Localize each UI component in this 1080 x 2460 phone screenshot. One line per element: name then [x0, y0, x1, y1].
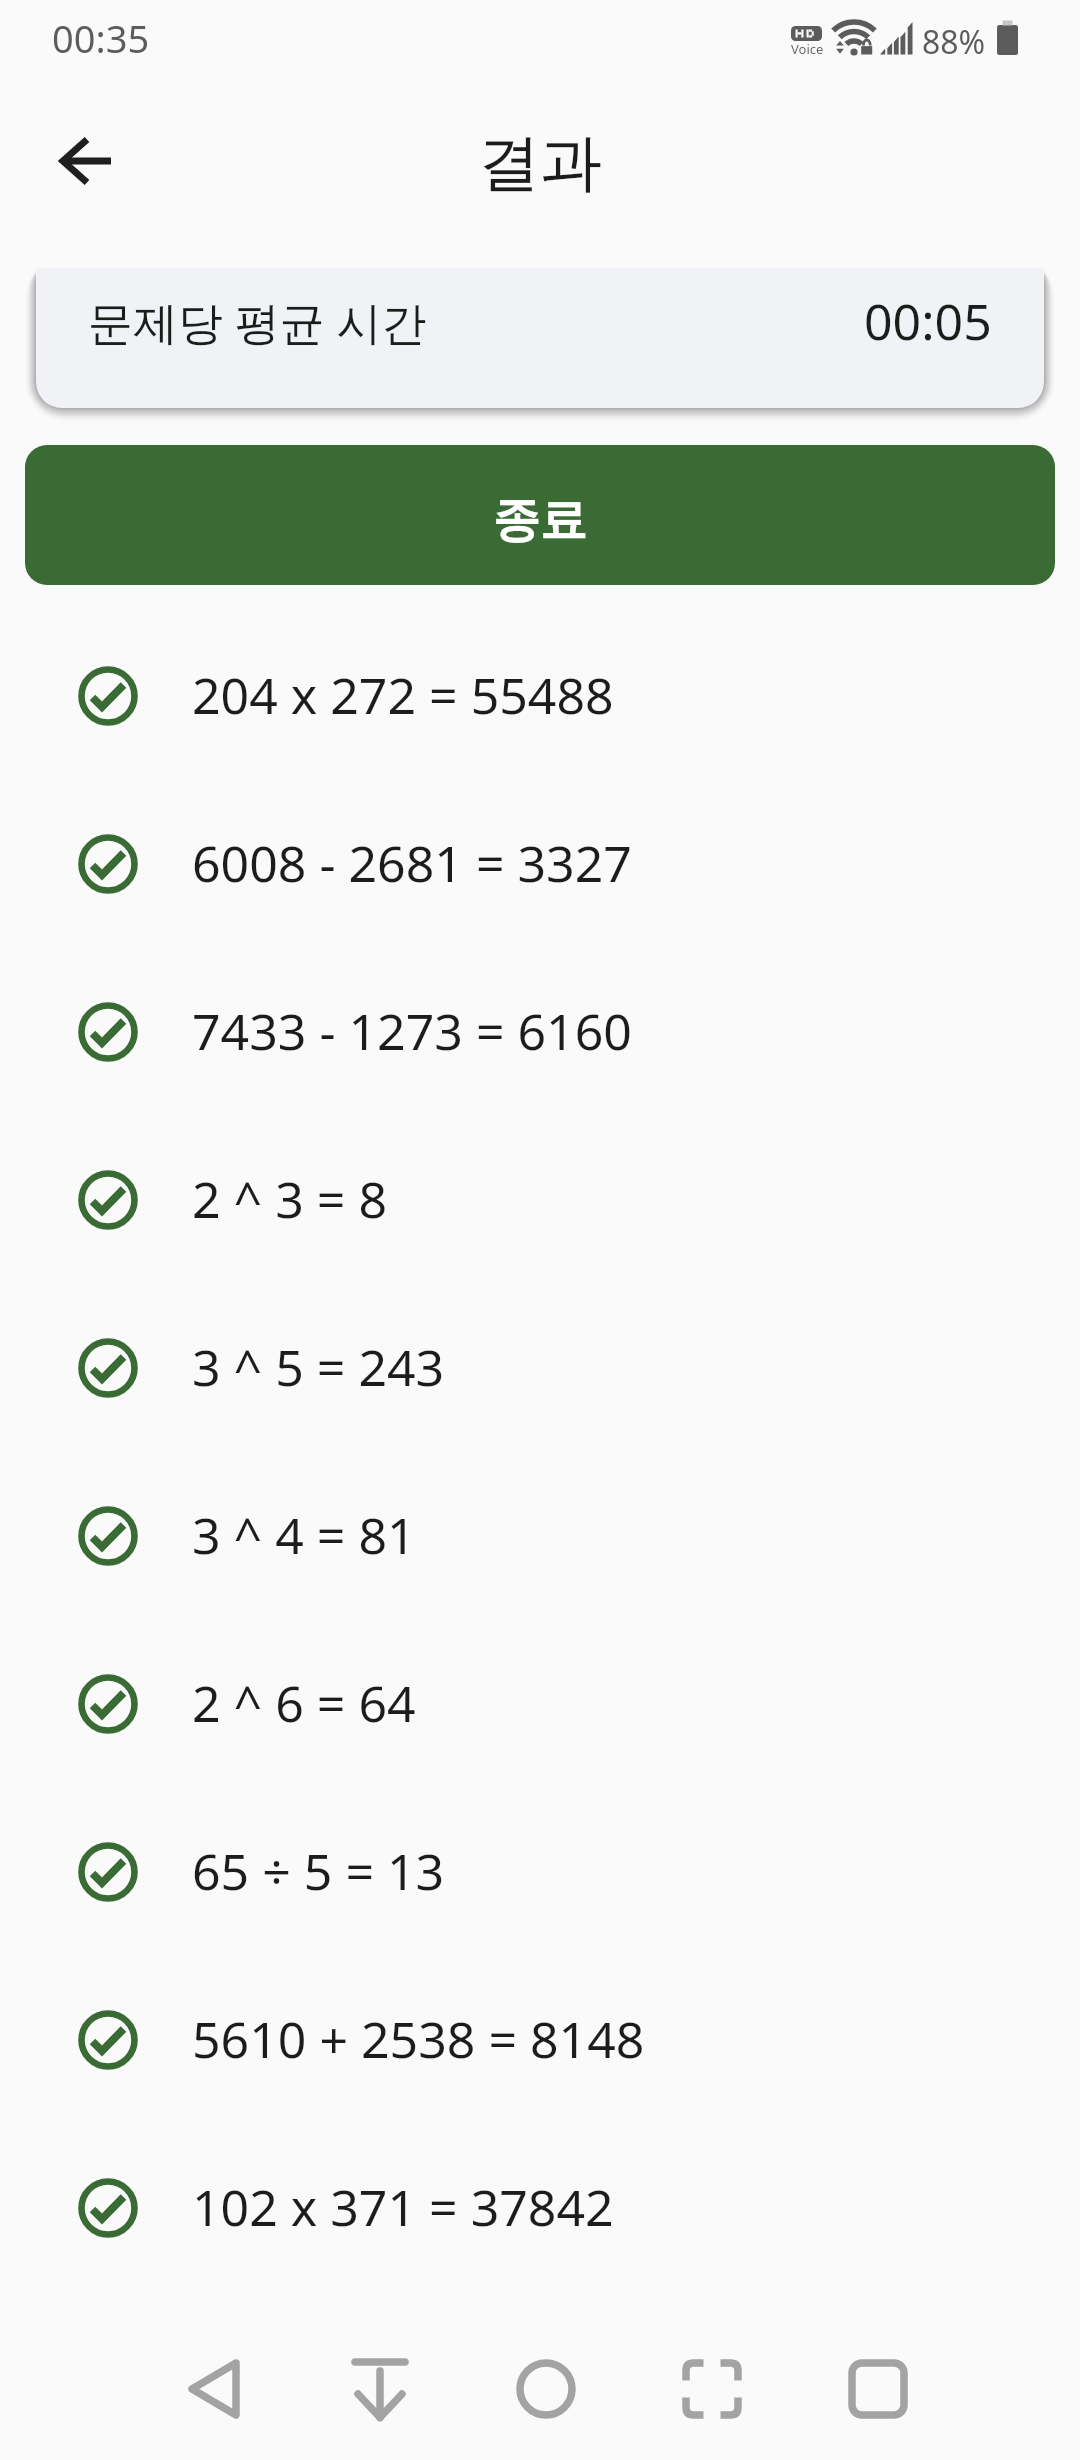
button[interactable]: Recents	[795, 2301, 961, 2460]
staticText: 88%	[922, 20, 986, 64]
staticText: 65 ÷ 5 = 13	[192, 1837, 445, 1905]
button[interactable]: 3 ^ 5 = 243	[0, 1284, 1080, 1452]
staticText: 204 x 272 = 55488	[192, 661, 614, 729]
staticText: 2 ^ 6 = 64	[192, 1669, 416, 1737]
staticText: 결과	[478, 124, 602, 202]
staticText: 3 ^ 4 = 81	[192, 1501, 416, 1569]
button[interactable]: 65 ÷ 5 = 13	[0, 1788, 1080, 1956]
button[interactable]: 6008 - 2681 = 3327	[0, 780, 1080, 948]
staticText: 00:05	[864, 287, 992, 355]
staticText: 3 ^ 5 = 243	[192, 1333, 445, 1401]
staticText: 102 x 371 = 37842	[192, 2173, 614, 2241]
button[interactable]: 3 ^ 4 = 81	[0, 1452, 1080, 1620]
button[interactable]: Home	[463, 2301, 629, 2460]
button[interactable]: 102 x 371 = 37842	[0, 2124, 1080, 2292]
staticText: 2 ^ 3 = 8	[192, 1165, 387, 1233]
staticText: Voice	[791, 40, 824, 58]
button[interactable]: 2 ^ 6 = 64	[0, 1620, 1080, 1788]
button[interactable]: 종료	[25, 445, 1055, 585]
button[interactable]: 5610 + 2538 = 8148	[0, 1956, 1080, 2124]
button[interactable]: Full screen	[629, 2301, 795, 2460]
button[interactable]: 7433 - 1273 = 6160	[0, 948, 1080, 1116]
button[interactable]: Back	[131, 2301, 297, 2460]
staticText: 5610 + 2538 = 8148	[192, 2005, 645, 2073]
button[interactable]: 2 ^ 3 = 8	[0, 1116, 1080, 1284]
staticText: 문제당 평균 시간	[88, 291, 427, 352]
button[interactable]: Back	[32, 106, 142, 216]
button[interactable]: 문제당 평균 시간	[36, 268, 1044, 408]
button[interactable]: Hide keyboard	[297, 2301, 463, 2460]
staticText: 7433 - 1273 = 6160	[192, 997, 632, 1065]
button[interactable]: 204 x 272 = 55488	[0, 612, 1080, 780]
staticText: 종료	[493, 491, 587, 550]
staticText: 00:35	[52, 12, 150, 64]
staticText: 6008 - 2681 = 3327	[192, 829, 632, 897]
